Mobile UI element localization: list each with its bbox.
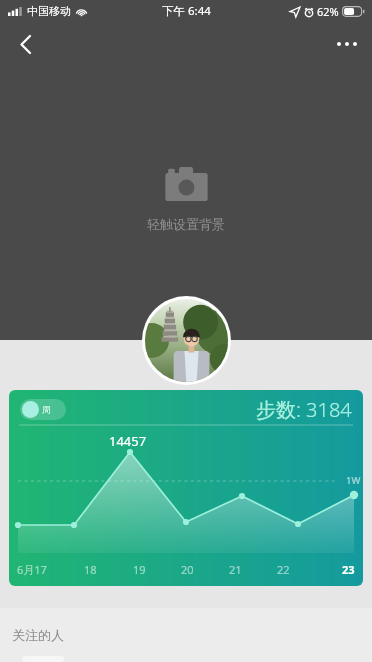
- staticText: 轻触设置背景: [147, 216, 225, 232]
- staticText: 关注的人: [12, 627, 64, 643]
- button[interactable]: Back: [5, 24, 45, 64]
- staticText: 周: [42, 404, 51, 415]
- staticText: 62%: [317, 4, 339, 19]
- staticText: 22: [277, 562, 290, 577]
- staticText: 步数: 3184: [256, 396, 352, 423]
- button[interactable]: 周: [20, 399, 66, 420]
- staticText: 1W: [346, 474, 361, 487]
- staticText: 18: [84, 562, 97, 577]
- staticText: 中国移动: [27, 4, 71, 18]
- staticText: 23: [342, 562, 355, 577]
- staticText: 20: [181, 562, 194, 577]
- button[interactable]: 14457: [9, 390, 363, 586]
- staticText: 19: [133, 562, 146, 577]
- staticText: 下午 6:44: [162, 3, 211, 19]
- staticText: 6月17: [17, 562, 47, 577]
- staticText: 14457: [109, 432, 147, 450]
- button[interactable]: More options: [327, 24, 367, 64]
- button[interactable]: Set background photo: [147, 166, 225, 232]
- staticText: 21: [229, 562, 242, 577]
- button[interactable]: Profile photo: [145, 299, 228, 382]
